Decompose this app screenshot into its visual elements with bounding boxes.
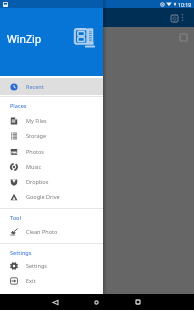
button[interactable]: Photos: [0, 144, 103, 159]
staticText: WinZip: [7, 32, 42, 46]
button[interactable]: Select all: [168, 12, 181, 25]
staticText: Clean Photo: [26, 228, 58, 235]
button[interactable]: Recent apps: [130, 294, 146, 310]
staticText: Recent: [26, 83, 44, 90]
staticText: Storage: [26, 132, 47, 139]
button[interactable]: Recent: [0, 79, 103, 94]
button[interactable]: More options: [177, 12, 188, 23]
staticText: Settings: [10, 249, 32, 256]
staticText: Places: [10, 102, 27, 109]
button[interactable]: My Files: [0, 113, 103, 128]
staticText: Music: [26, 163, 42, 170]
staticText: Dropbox: [26, 178, 49, 185]
button[interactable]: Back: [47, 294, 63, 310]
button[interactable]: [0, 78, 103, 95]
button[interactable]: Dropbox: [0, 174, 103, 189]
staticText: Exit: [26, 277, 36, 284]
button[interactable]: Select item: [178, 32, 189, 43]
button[interactable]: Storage: [0, 128, 103, 143]
button[interactable]: Music: [0, 159, 103, 174]
staticText: 10:19: [178, 1, 192, 8]
staticText: Google Drive: [26, 193, 60, 200]
staticText: Tool: [10, 214, 21, 221]
staticText: Photos: [26, 148, 45, 155]
button[interactable]: Home: [88, 294, 104, 310]
button[interactable]: Exit: [0, 273, 103, 288]
button[interactable]: Settings: [0, 258, 103, 273]
staticText: My Files: [26, 117, 47, 124]
button[interactable]: Google Drive: [0, 189, 103, 204]
staticText: Settings: [26, 262, 47, 269]
button[interactable]: Clean Photo: [0, 224, 103, 239]
